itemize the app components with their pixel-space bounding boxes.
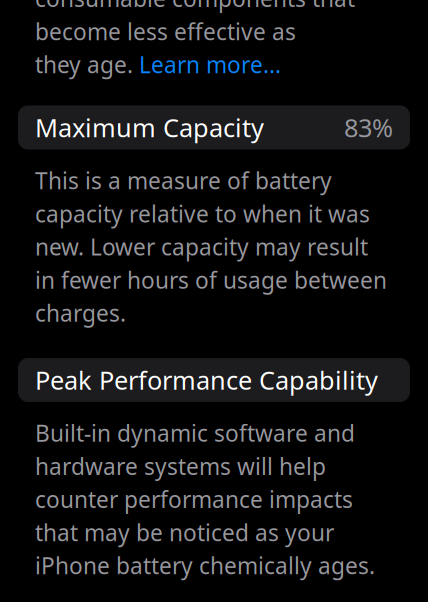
staticText: Peak Performance Capability	[35, 363, 378, 397]
staticText: Learn more...	[139, 49, 281, 79]
staticText: they age.	[35, 49, 139, 79]
staticText: This is a measure of battery capacity re…	[35, 165, 387, 328]
button[interactable]: Peak Performance Capability	[18, 358, 410, 402]
button[interactable]: Maximum Capacity	[18, 105, 410, 149]
staticText: Phone batteries, like all rechargeable b…	[35, 0, 355, 46]
staticText: Maximum Capacity	[35, 111, 264, 144]
staticText: 83%	[344, 111, 393, 144]
staticText: Built-in dynamic software and hardware s…	[35, 418, 375, 580]
button[interactable]: Learn more...	[139, 49, 281, 79]
